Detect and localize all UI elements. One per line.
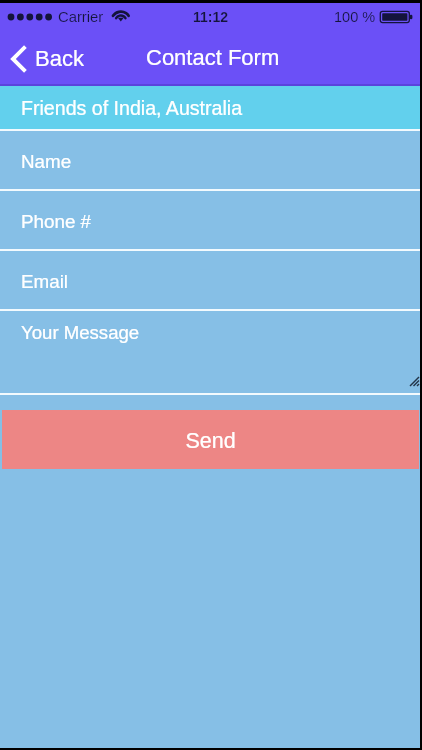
- staticText: Back: [35, 46, 84, 71]
- staticText: 11:12: [193, 9, 229, 25]
- staticText: 100 %: [334, 9, 376, 25]
- button[interactable]: Friends of India, Australia: [0, 86, 422, 129]
- staticText: Name: [21, 151, 72, 172]
- staticText: Email: [21, 271, 69, 292]
- staticText: Send: [185, 429, 236, 453]
- staticText: Friends of India, Australia: [21, 97, 243, 119]
- button[interactable]: Your Message: [0, 311, 422, 393]
- button[interactable]: Phone #: [0, 191, 422, 249]
- button[interactable]: Back: [0, 38, 98, 80]
- staticText: Contact Form: [146, 45, 280, 70]
- staticText: Phone #: [21, 211, 92, 232]
- button[interactable]: Name: [0, 131, 422, 189]
- staticText: Your Message: [21, 322, 140, 343]
- staticText: Carrier: [58, 9, 104, 26]
- button[interactable]: Email: [0, 251, 422, 309]
- button[interactable]: Send: [2, 410, 419, 469]
